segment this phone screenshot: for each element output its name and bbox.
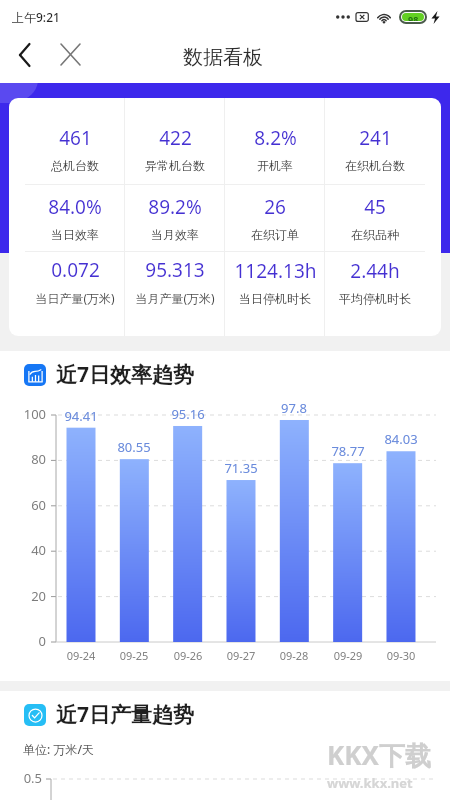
- staticText: 95.313: [145, 257, 205, 283]
- staticText: 09-30: [376, 648, 426, 663]
- staticText: 在织品种: [351, 227, 399, 242]
- staticText: 95.16: [163, 405, 213, 423]
- staticText: 当月产量(万米): [135, 290, 215, 306]
- button[interactable]: 近7日产量趋势: [24, 700, 450, 729]
- staticText: 总机台数: [51, 158, 99, 173]
- staticText: 80: [5, 450, 46, 468]
- staticText: 80.55: [109, 438, 159, 456]
- staticText: 单位: 万米/天: [23, 741, 95, 757]
- staticText: 94.41: [56, 407, 106, 425]
- staticText: 45: [364, 194, 386, 220]
- staticText: 461: [59, 125, 92, 151]
- staticText: 0.072: [51, 257, 100, 283]
- staticText: 78.77: [323, 442, 373, 460]
- staticText: 71.35: [216, 459, 266, 477]
- staticText: 上午9:21: [12, 9, 60, 25]
- staticText: 当日效率: [51, 227, 99, 242]
- staticText: 当日停机时长: [239, 291, 311, 306]
- staticText: 20: [5, 587, 46, 605]
- staticText: 平均停机时长: [339, 291, 411, 306]
- staticText: 60: [5, 496, 46, 514]
- staticText: 84.0%: [48, 194, 102, 220]
- staticText: 数据看板: [183, 45, 263, 70]
- staticText: 1124.13h: [234, 258, 317, 284]
- staticText: 在织机台数: [345, 158, 405, 173]
- staticText: 在织订单: [251, 227, 299, 242]
- button[interactable]: Close: [50, 36, 94, 80]
- staticText: 0.5: [5, 769, 42, 787]
- staticText: 40: [5, 541, 46, 559]
- staticText: 09-29: [323, 648, 373, 663]
- staticText: 当日产量(万米): [35, 290, 115, 306]
- staticText: 异常机台数: [145, 158, 205, 173]
- staticText: KKX下载: [327, 737, 431, 773]
- staticText: 当月效率: [151, 227, 199, 242]
- staticText: 241: [359, 125, 392, 151]
- staticText: 89.2%: [148, 194, 202, 220]
- staticText: 09-25: [109, 648, 159, 663]
- button[interactable]: 近7日效率趋势: [24, 360, 450, 389]
- staticText: 97.8: [269, 399, 319, 417]
- staticText: 84.03: [376, 430, 426, 448]
- staticText: 0: [5, 632, 46, 650]
- staticText: 09-28: [269, 648, 319, 663]
- staticText: 09-26: [163, 648, 213, 663]
- staticText: 422: [159, 125, 192, 151]
- staticText: 09-24: [56, 648, 106, 663]
- staticText: www.kkx.net: [327, 774, 413, 792]
- staticText: 近7日效率趋势: [56, 360, 195, 389]
- staticText: 2.44h: [350, 258, 400, 284]
- staticText: 100: [5, 405, 46, 423]
- staticText: 09-27: [216, 648, 266, 663]
- staticText: 98: [408, 13, 419, 21]
- staticText: 8.2%: [254, 125, 297, 151]
- staticText: 近7日产量趋势: [56, 700, 195, 729]
- button[interactable]: Back: [0, 33, 50, 83]
- staticText: 26: [264, 194, 286, 220]
- staticText: 开机率: [257, 158, 293, 173]
